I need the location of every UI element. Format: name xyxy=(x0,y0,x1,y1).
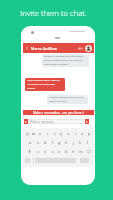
button[interactable]: Write a message xyxy=(28,119,84,124)
button[interactable]: I'll make a reservation for two in Las F… xyxy=(47,95,88,104)
button[interactable]: c xyxy=(49,147,56,155)
button[interactable]: v xyxy=(56,147,63,155)
button[interactable]: j xyxy=(70,138,77,146)
staticText: l xyxy=(87,140,89,145)
button[interactable]: n xyxy=(70,147,77,155)
staticText: g xyxy=(58,140,61,145)
button[interactable]: t xyxy=(51,129,58,137)
staticText: d xyxy=(44,140,47,145)
other: Back xyxy=(25,46,29,50)
staticText: f xyxy=(52,140,54,145)
button[interactable]: g xyxy=(56,138,63,146)
button[interactable]: Shift xyxy=(24,147,34,155)
button[interactable]: a xyxy=(26,138,34,146)
button[interactable]: i xyxy=(72,129,79,137)
button[interactable]: Hey Bree, I see you're from West Virgini… xyxy=(42,54,89,67)
button[interactable]: p xyxy=(86,129,93,137)
button[interactable]: Wow, local world twenty. Where do you pr… xyxy=(25,78,65,91)
button[interactable]: b xyxy=(63,147,70,155)
button[interactable]: d xyxy=(42,138,49,146)
button[interactable]: Attach xyxy=(24,119,28,124)
button[interactable]: Backspace xyxy=(84,147,93,155)
staticText: t xyxy=(54,131,56,136)
button[interactable]: u xyxy=(65,129,72,137)
button[interactable]: Contact photo xyxy=(85,45,92,52)
button[interactable]: s xyxy=(34,138,42,146)
staticText: n xyxy=(72,149,75,154)
staticText: p xyxy=(88,131,91,136)
button[interactable]: f xyxy=(49,138,56,146)
staticText: c xyxy=(52,149,54,154)
staticText: y xyxy=(60,131,63,136)
staticText: o xyxy=(81,131,84,136)
button[interactable]: r xyxy=(44,129,51,137)
button[interactable]: x xyxy=(42,147,49,155)
staticText: s xyxy=(37,140,39,145)
staticText: w xyxy=(32,131,36,136)
staticText: z xyxy=(37,149,39,154)
button[interactable]: Send xyxy=(85,119,89,124)
button[interactable]: l xyxy=(84,138,91,146)
button[interactable]: q xyxy=(24,129,30,137)
staticText: Marco Audilore xyxy=(31,46,58,51)
staticText: Wow, local world twenty. Where do you pr… xyxy=(27,79,63,90)
button[interactable]: h xyxy=(63,138,70,146)
staticText: a xyxy=(29,140,32,145)
staticText: j xyxy=(73,140,75,145)
staticText: u xyxy=(67,131,70,136)
staticText: e xyxy=(39,131,42,136)
staticText: r xyxy=(47,131,49,136)
staticText: k xyxy=(79,140,82,145)
staticText: i xyxy=(75,131,77,136)
staticText: m xyxy=(79,149,83,154)
staticText: x xyxy=(44,149,47,154)
button[interactable]: Back xyxy=(23,43,94,53)
button[interactable]: Make a reservation - see you there :) xyxy=(23,110,94,116)
staticText: v xyxy=(58,149,61,154)
staticText: Write a message xyxy=(30,120,54,124)
staticText: b xyxy=(65,149,68,154)
button[interactable]: m xyxy=(77,147,84,155)
button[interactable]: e xyxy=(37,129,44,137)
button[interactable]: w xyxy=(30,129,37,137)
button[interactable]: z xyxy=(34,147,42,155)
staticText: I'll make a reservation for two in Las F… xyxy=(49,96,86,103)
staticText: Invite them to chat. xyxy=(20,8,87,18)
button[interactable]: Video call xyxy=(78,47,83,50)
staticText: q xyxy=(26,131,29,136)
staticText: Make a reservation - see you there :) xyxy=(33,111,85,115)
staticText: h xyxy=(65,140,68,145)
staticText: Hey Bree, I see you're from West Virgini… xyxy=(44,55,87,66)
button[interactable]: k xyxy=(77,138,84,146)
button[interactable]: y xyxy=(58,129,65,137)
button[interactable]: o xyxy=(79,129,86,137)
